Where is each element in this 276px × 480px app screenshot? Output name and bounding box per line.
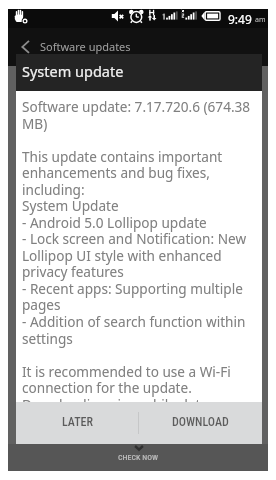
button[interactable]: CHECK NOW — [8, 444, 268, 471]
staticText: - Recent apps: Supporting multiple — [22, 279, 243, 298]
staticText: privacy features — [22, 262, 124, 281]
staticText: connection for the update. — [22, 378, 192, 397]
staticText: - Android 5.0 Lollipop update — [22, 213, 207, 232]
staticText: This update contains important — [22, 147, 223, 166]
staticText: - Lock screen and Notification: New — [22, 229, 247, 248]
button[interactable]: LATER — [16, 402, 138, 444]
staticText: am — [255, 15, 266, 25]
staticText: Software updates — [40, 39, 131, 54]
staticText: settings — [22, 329, 73, 348]
staticText: 9:49 — [228, 11, 252, 27]
staticText: Lollipop UI style with enhanced — [22, 246, 222, 265]
staticText: CHECK NOW — [118, 453, 159, 462]
staticText: Software update: 7.17.720.6 (674.38 — [22, 97, 251, 116]
staticText: System update — [22, 61, 124, 81]
button[interactable]: DOWNLOAD — [139, 402, 262, 444]
button[interactable]: Back — [8, 28, 268, 66]
staticText: enhancements and bug fixes, — [22, 163, 210, 182]
staticText: MB) — [22, 114, 48, 133]
staticText: It is recommended to use a Wi-Fi — [22, 362, 231, 381]
staticText: System Update — [22, 196, 119, 215]
staticText: - Addition of search function within — [22, 312, 246, 331]
other: Back — [21, 40, 31, 54]
staticText: LATER — [62, 415, 93, 429]
staticText: DOWNLOAD — [172, 415, 229, 429]
staticText: including: — [22, 180, 85, 199]
staticText: pages — [22, 295, 61, 314]
staticText: Downloading via mobile data — [22, 395, 209, 414]
